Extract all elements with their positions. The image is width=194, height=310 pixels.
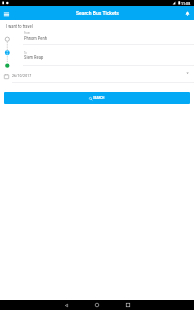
staticText: Siem Reap [24, 55, 44, 60]
button[interactable]: To [23, 49, 194, 65]
button[interactable]: Recent apps [122, 300, 134, 310]
button[interactable]: 26/10/2017 [0, 69, 194, 82]
button[interactable]: Open navigation menu [0, 6, 13, 20]
button[interactable]: SEARCH [4, 92, 190, 104]
button[interactable]: Home [91, 300, 103, 310]
staticText: From [24, 31, 30, 34]
staticText: I want to travel [6, 24, 33, 29]
staticText: Search Bus Tickets [76, 10, 119, 16]
staticText: Phnom Penh [24, 36, 47, 41]
staticText: SEARCH [93, 96, 105, 100]
staticText: 11:08 [181, 1, 191, 6]
button[interactable]: Notifications [180, 6, 194, 20]
staticText: To [24, 51, 27, 54]
staticText: 26/10/2017 [12, 73, 32, 78]
button[interactable]: Back [60, 300, 72, 310]
button[interactable]: From [23, 29, 194, 45]
